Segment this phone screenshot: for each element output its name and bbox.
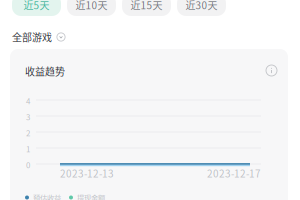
staticText: 近5天 (23, 0, 49, 12)
staticText: 提现金额 (77, 192, 105, 200)
button[interactable]: 近10天 (67, 0, 116, 16)
staticText: 2023-12-17 (207, 166, 261, 180)
staticText: 2023-12-13 (60, 166, 114, 180)
staticText: 0 (26, 159, 30, 171)
button[interactable]: 近5天 (12, 0, 61, 16)
staticText: 2 (26, 127, 30, 139)
staticText: 全部游戏 (12, 30, 52, 44)
staticText: 近15天 (130, 0, 162, 12)
button[interactable]: 近15天 (122, 0, 171, 16)
staticText: 4 (26, 95, 30, 107)
staticText: 近10天 (75, 0, 107, 12)
staticText: 预估收益 (33, 192, 61, 200)
button[interactable]: 近30天 (177, 0, 226, 16)
staticText: 3 (26, 111, 30, 123)
staticText: 1 (26, 143, 30, 155)
staticText: 近30天 (185, 0, 217, 12)
staticText: 收益趋势 (25, 64, 65, 78)
button[interactable]: 收益趋势说明 (265, 64, 278, 77)
button[interactable]: 全部游戏 (12, 28, 82, 46)
